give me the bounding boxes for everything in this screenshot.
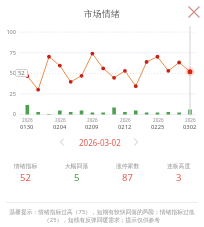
button[interactable]: Close bbox=[185, 3, 203, 21]
staticText: 0225 bbox=[151, 123, 165, 131]
staticText: 25 bbox=[0, 90, 16, 98]
button[interactable]: 涨停家数 bbox=[102, 162, 153, 182]
staticText: 5 bbox=[74, 171, 80, 184]
button[interactable]: Next day bbox=[129, 135, 143, 149]
staticText: 涨停家数 bbox=[116, 162, 140, 169]
staticText: 2026-03-02 bbox=[79, 137, 121, 148]
staticText: 75 bbox=[0, 49, 16, 57]
staticText: 0 bbox=[0, 110, 16, 118]
button[interactable]: 情绪指标 bbox=[0, 162, 51, 182]
staticText: 温馨提示：情绪指标过高（75），短期有较快回落的风险；情绪指标过低（25），短线… bbox=[5, 208, 199, 223]
staticText: 52 bbox=[18, 69, 25, 77]
button[interactable]: 连板高度 bbox=[153, 162, 204, 182]
button[interactable]: 大幅回落 bbox=[51, 162, 102, 182]
staticText: 2026 bbox=[55, 117, 66, 123]
staticText: 0130 bbox=[20, 123, 34, 131]
staticText: 2026 bbox=[22, 117, 33, 123]
staticText: 3 bbox=[176, 171, 182, 184]
staticText: 50 bbox=[0, 69, 16, 77]
staticText: 2026 bbox=[120, 117, 131, 123]
staticText: 情绪指标 bbox=[14, 162, 38, 169]
staticText: 0212 bbox=[118, 123, 132, 131]
staticText: 2026 bbox=[153, 117, 164, 123]
staticText: 100 bbox=[0, 28, 16, 36]
button[interactable]: Previous day bbox=[55, 135, 69, 149]
staticText: 2026 bbox=[185, 117, 196, 123]
staticText: 连板高度 bbox=[167, 162, 191, 169]
staticText: 0204 bbox=[53, 123, 67, 131]
staticText: 市场情绪 bbox=[84, 8, 120, 19]
staticText: 0302 bbox=[183, 123, 197, 131]
staticText: 0209 bbox=[85, 123, 99, 131]
button[interactable]: 2026-03-02 bbox=[76, 137, 123, 148]
staticText: 2026 bbox=[87, 117, 98, 123]
staticText: 87 bbox=[122, 171, 133, 184]
staticText: 大幅回落 bbox=[65, 162, 89, 169]
staticText: 52 bbox=[20, 171, 31, 184]
